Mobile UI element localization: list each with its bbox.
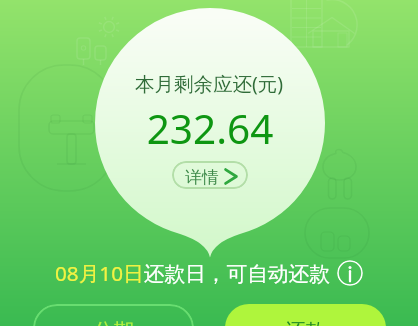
staticText: 分期	[93, 318, 134, 326]
button[interactable]: 还款	[225, 304, 386, 326]
button[interactable]: 还款说明	[337, 260, 363, 286]
staticText: 本月剩余应还(元)	[0, 70, 418, 326]
button[interactable]: 详情	[172, 161, 248, 189]
staticText: 08月10日还款日，可自动还款	[55, 259, 330, 287]
staticText: 232.64	[1, 101, 418, 326]
button[interactable]: 分期	[33, 304, 194, 326]
staticText: 详情	[185, 167, 219, 188]
staticText: 还款	[285, 318, 326, 326]
